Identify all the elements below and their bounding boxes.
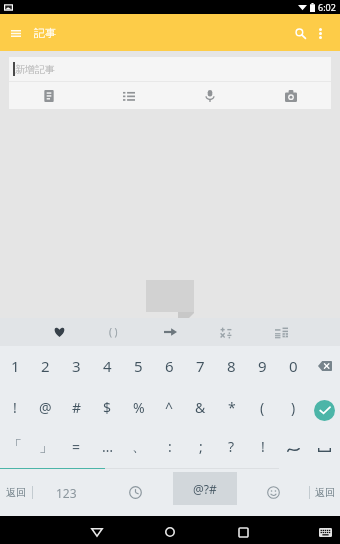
button[interactable]: Navigation menu [4,21,28,45]
staticText: * [228,398,236,417]
staticText: # [72,398,82,417]
button[interactable]: Back [83,518,111,544]
button[interactable]: Recent [117,469,153,516]
button[interactable]: ( ) [109,325,118,339]
button[interactable]: 8 [216,346,247,389]
staticText: = [72,437,81,456]
button[interactable]: 」 [30,431,61,468]
staticText: 3 [72,356,81,376]
button[interactable]: $ [92,389,123,431]
staticText: 、 [132,438,146,456]
staticText: @ [39,398,52,417]
button[interactable]: Emoji [255,469,291,516]
staticText: 9 [258,356,267,376]
button[interactable]: # [61,389,92,431]
staticText: 記事 [34,26,56,40]
staticText: ^ [165,398,174,417]
staticText: : [168,437,172,456]
staticText: 8 [227,356,236,376]
button[interactable]: ! [0,389,30,431]
button[interactable]: 6 [154,346,185,389]
button[interactable]: ^ [154,389,185,431]
staticText: 「 [8,438,22,456]
staticText: $ [103,398,112,417]
button[interactable]: 3 [61,346,92,389]
button[interactable]: Space [309,431,340,468]
button[interactable]: More options [308,21,332,45]
button[interactable]: Recent apps [229,518,257,544]
staticText: 2 [41,356,50,376]
button[interactable]: ; [185,431,216,468]
button[interactable]: 返回 [0,469,32,516]
staticText: 7 [196,356,205,376]
button[interactable]: Layout [268,319,294,345]
button[interactable]: 返回 [309,469,340,516]
button[interactable]: Search [288,21,312,45]
staticText: 6 [165,356,174,376]
staticText: ( [260,398,265,417]
button[interactable]: Maths symbols [213,319,239,345]
button[interactable]: 1 [0,346,30,389]
button[interactable]: 2 [30,346,61,389]
button[interactable]: New photo note [250,82,331,109]
button[interactable]: … [92,431,123,468]
button[interactable]: Enter [309,389,340,431]
button[interactable]: 5 [123,346,154,389]
button[interactable]: 123 [46,469,86,516]
staticText: 新增記事 [15,63,55,76]
button[interactable]: @ [30,389,61,431]
staticText: ) [291,398,296,417]
staticText: 4 [103,356,112,376]
button[interactable]: Favourite [46,319,72,345]
staticText: 0 [289,356,298,376]
staticText: … [102,437,114,456]
staticText: ! [13,398,17,417]
button[interactable]: Home [156,518,184,544]
staticText: 返回 [6,486,26,499]
button[interactable]: ) [278,389,309,431]
button[interactable]: Backspace [309,346,340,389]
button[interactable]: ( [247,389,278,431]
button[interactable]: 、 [123,431,154,468]
staticText: 1 [11,356,20,376]
button[interactable]: @?# [173,472,237,505]
button[interactable]: * [216,389,247,431]
button[interactable]: Switch keyboard [311,518,339,544]
staticText: 返回 [315,486,335,499]
staticText: 123 [56,485,77,501]
button[interactable]: & [185,389,216,431]
button[interactable]: 4 [92,346,123,389]
button[interactable]: New voice note [169,82,250,109]
staticText: ; [199,437,203,456]
staticText: 」 [39,438,53,456]
staticText: @?# [193,481,217,497]
button[interactable]: 7 [185,346,216,389]
staticText: 5 [134,356,143,376]
button[interactable]: = [61,431,92,468]
button[interactable]: 9 [247,346,278,389]
button[interactable]: 0 [278,346,309,389]
button[interactable]: Tilde [278,431,309,468]
button[interactable]: % [123,389,154,431]
button[interactable]: New list [89,82,169,109]
staticText: % [133,398,145,417]
button[interactable]: ? [216,431,247,468]
staticText: & [195,398,206,417]
staticText: ! [261,437,265,456]
button[interactable]: 「 [0,431,30,468]
staticText: ? [228,437,235,456]
button[interactable]: ! [247,431,278,468]
button[interactable]: New text note [9,82,89,109]
button[interactable]: Next [157,319,183,345]
staticText: 6:02 [318,1,336,13]
button[interactable]: : [154,431,185,468]
